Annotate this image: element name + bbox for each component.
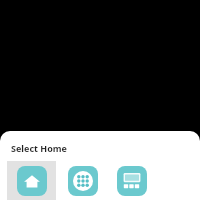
button[interactable]: App drawer launcher <box>60 161 105 200</box>
button[interactable]: Home launcher, selected <box>7 161 56 200</box>
staticText: Select Home <box>11 142 67 154</box>
button[interactable]: Calculator launcher <box>109 161 154 200</box>
